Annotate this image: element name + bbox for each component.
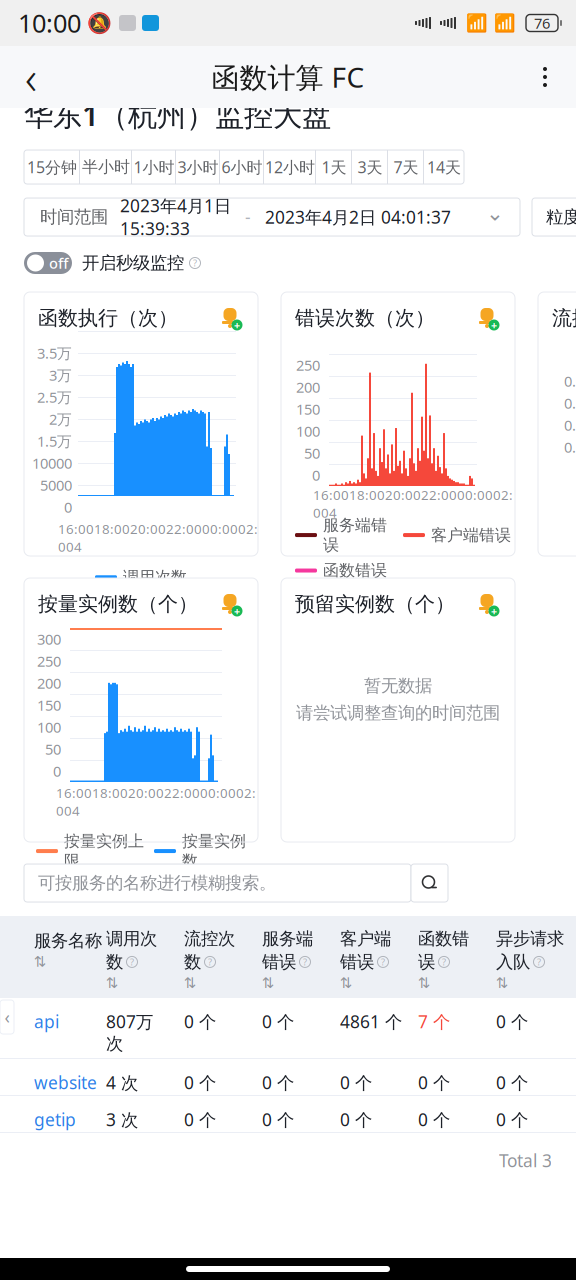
staticText: 0 个 — [340, 1108, 372, 1131]
staticText: 误 — [418, 951, 435, 973]
button[interactable]: api — [0, 998, 576, 1058]
staticText: ? — [537, 956, 541, 968]
button[interactable]: 粒度 — [532, 198, 576, 236]
button[interactable]: 7天 — [388, 150, 424, 184]
button[interactable]: 创建告警 预留实例数（个） — [473, 590, 501, 618]
staticText: ⇅ — [496, 975, 508, 991]
staticText: 入队 — [496, 951, 530, 973]
staticText: 调用次 — [106, 928, 157, 949]
staticText: 错误次数（次） — [295, 306, 435, 330]
staticText: 5000 — [40, 475, 72, 495]
staticText: ⇅ — [340, 975, 352, 991]
staticText: 0.8 — [564, 371, 576, 391]
staticText: 16:0018:0020:0022:0000:0002:004 — [56, 784, 256, 819]
staticText: 2万 — [49, 409, 72, 429]
staticText: 2.5万 — [37, 387, 72, 407]
button[interactable]: 更多 — [514, 46, 576, 108]
staticText: 4861 个 — [340, 1010, 402, 1033]
staticText: 服务端 — [262, 928, 313, 949]
staticText: 流控 — [552, 306, 576, 330]
staticText: 数 — [106, 951, 123, 973]
button[interactable]: website — [0, 1059, 576, 1095]
staticText: ? — [381, 956, 385, 968]
staticText: off — [49, 253, 68, 273]
staticText: 7 个 — [418, 1010, 450, 1033]
staticText: ? — [303, 956, 307, 968]
button[interactable]: 1小时 — [132, 150, 176, 184]
staticText: 250 — [37, 651, 61, 671]
staticText: 10000 — [32, 453, 72, 473]
staticText: 时间范围 — [40, 206, 108, 228]
button[interactable]: 3天 — [352, 150, 388, 184]
button[interactable]: 搜索 — [411, 864, 448, 902]
button[interactable]: 1天 — [316, 150, 352, 184]
button[interactable]: 开启秒级监控开关 — [24, 252, 72, 274]
staticText: 0 个 — [262, 1108, 294, 1131]
staticText: ⇅ — [34, 953, 46, 970]
staticText: 按量实例数 — [182, 831, 246, 871]
staticText: 6小时 — [221, 156, 262, 178]
staticText: 半小时 — [82, 157, 130, 177]
staticText: 76 — [534, 13, 550, 33]
staticText: 次 — [106, 1033, 123, 1054]
staticText: 📶 — [466, 13, 488, 33]
button[interactable]: 创建告警 函数执行（次） — [216, 304, 244, 332]
staticText: 250 — [296, 355, 320, 375]
staticText: ‹ — [4, 1005, 9, 1028]
staticText: 300 — [37, 629, 61, 649]
staticText: 1小时 — [133, 156, 174, 178]
staticText: 16:0018:0020:0022:0000:0002:004 — [58, 520, 258, 555]
staticText: 函数错 — [418, 928, 469, 949]
staticText: 数 — [184, 951, 201, 973]
button[interactable]: 14天 — [424, 150, 464, 184]
button[interactable]: 展开侧栏 — [0, 1000, 14, 1034]
staticText: 100 — [296, 421, 320, 441]
staticText: 按量实例数（个） — [38, 592, 198, 616]
button[interactable]: 创建告警 按量实例数（个） — [216, 590, 244, 618]
staticText: ? — [208, 956, 212, 968]
staticText: 16:0018:0020:0022:0000:0002:004 — [313, 486, 513, 521]
staticText: 0 个 — [184, 1108, 216, 1131]
button[interactable]: 返回 — [0, 46, 62, 108]
button[interactable]: 6小时 — [220, 150, 264, 184]
staticText: 14天 — [427, 156, 461, 178]
staticText: 3万 — [49, 365, 72, 385]
staticText: + — [234, 604, 240, 618]
button[interactable]: 时间范围 — [24, 198, 520, 236]
staticText: 0 个 — [418, 1071, 450, 1094]
staticText: 0 个 — [184, 1071, 216, 1094]
staticText: Total 3 — [499, 1149, 552, 1172]
staticText: 0 个 — [496, 1071, 528, 1094]
staticText: ⇅ — [184, 975, 196, 991]
staticText: 3 次 — [106, 1108, 138, 1131]
staticText: 预留实例数（个） — [295, 592, 455, 616]
button[interactable]: 可按服务的名称进行模糊搜索。 — [24, 864, 411, 902]
button[interactable]: getip — [0, 1096, 576, 1132]
staticText: ‹ — [25, 47, 37, 107]
staticText: 0 个 — [418, 1108, 450, 1131]
staticText: 服务端错误 — [323, 515, 387, 555]
button[interactable]: 12小时 — [264, 150, 316, 184]
staticText: 可按服务的名称进行模糊搜索。 — [38, 872, 276, 894]
staticText: 200 — [296, 377, 320, 397]
staticText: 流控次 — [184, 928, 235, 949]
staticText: 2023年4月2日 04:01:37 — [265, 205, 451, 228]
staticText: - — [245, 205, 251, 228]
staticText: 3天 — [357, 156, 382, 178]
button[interactable]: 15分钟 — [24, 150, 80, 184]
staticText: ⌄ — [486, 201, 504, 225]
button[interactable]: 3小时 — [176, 150, 220, 184]
staticText: 0 个 — [262, 1010, 294, 1033]
staticText: 按量实例上限 — [64, 831, 144, 871]
staticText: + — [491, 604, 497, 618]
staticText: ? — [193, 257, 197, 269]
staticText: 15分钟 — [27, 156, 77, 178]
staticText: 50 — [304, 443, 320, 463]
button[interactable]: 半小时 — [80, 150, 132, 184]
staticText: 1.5万 — [37, 431, 72, 451]
staticText: 0 — [53, 761, 61, 781]
staticText: 0.2 — [564, 437, 576, 457]
staticText: website — [34, 1071, 97, 1094]
staticText: 2023年4月1日 15:39:33 — [120, 194, 231, 240]
button[interactable]: 创建告警 错误次数（次） — [473, 304, 501, 332]
